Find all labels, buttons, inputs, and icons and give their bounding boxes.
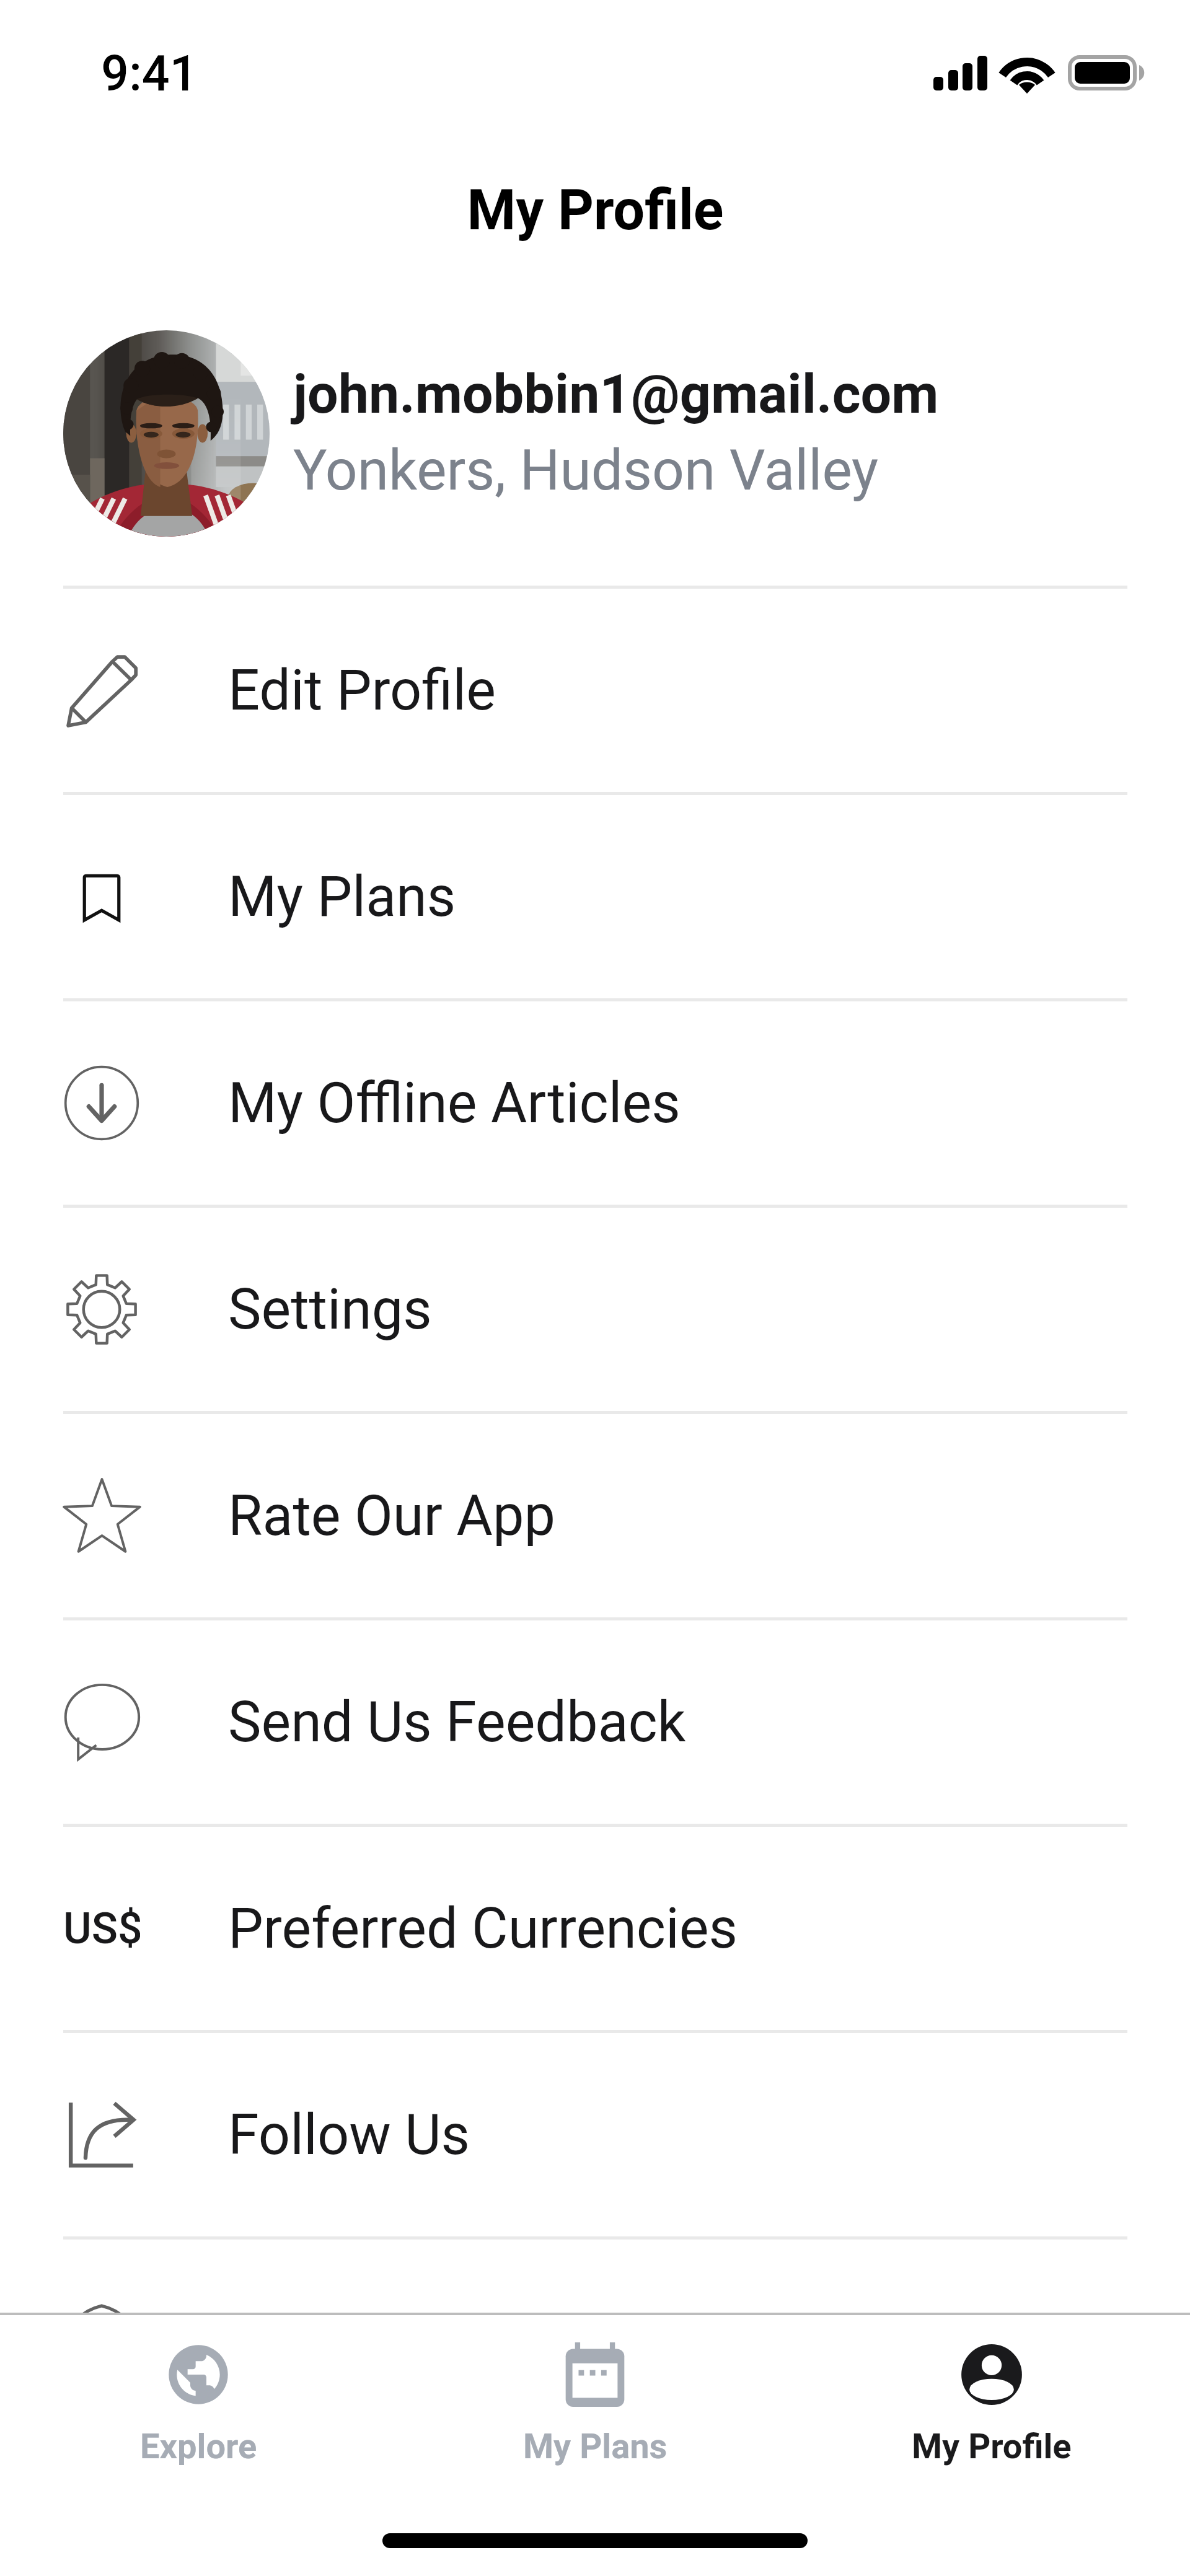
button[interactable]: Offline articles [0, 1001, 1190, 1205]
other: Edit [63, 652, 140, 729]
staticText: john.mobbin1@gmail.com [293, 362, 939, 426]
staticText: Yonkers, Hudson Valley [293, 437, 879, 504]
button[interactable]: Send us feedback [0, 1620, 1190, 1824]
staticText: My Plans [228, 864, 456, 930]
other: Send us feedback [63, 1684, 140, 1761]
button[interactable]: My Profile [793, 2315, 1190, 2467]
staticText: My Profile [912, 2426, 1072, 2467]
button[interactable]: My Plans [397, 2315, 793, 2467]
staticText: My Plans [523, 2426, 668, 2467]
button[interactable]: US$ [0, 1827, 1190, 2030]
staticText: My Profile [467, 178, 724, 243]
staticText: US$ [63, 1903, 140, 1954]
other: Rate our app [63, 1477, 140, 1554]
staticText: About Us [228, 2309, 456, 2374]
other: My plans [63, 858, 140, 935]
staticText: Follow Us [228, 2103, 470, 2168]
staticText: Explore [140, 2426, 257, 2467]
button[interactable]: Edit [0, 589, 1190, 792]
staticText: Rate Our App [228, 1484, 556, 1549]
other: Profile photo [63, 330, 270, 537]
staticText: Settings [228, 1277, 432, 1342]
staticText: My Offline Articles [228, 1071, 681, 1136]
button[interactable]: Settings [0, 1208, 1190, 1411]
staticText: Preferred Currencies [228, 1896, 738, 1961]
button[interactable]: Follow us [0, 2033, 1190, 2236]
button[interactable]: My plans [0, 795, 1190, 998]
button[interactable]: Explore [0, 2315, 397, 2467]
other: About us [63, 2303, 140, 2380]
button[interactable]: Rate our app [0, 1414, 1190, 1617]
other: Settings [63, 1271, 140, 1348]
staticText: Edit Profile [228, 658, 496, 723]
staticText: 9:41 [101, 45, 198, 103]
other: Follow us [63, 2096, 140, 2173]
staticText: Send Us Feedback [228, 1690, 686, 1755]
other: Offline articles [63, 1065, 140, 1141]
button[interactable]: About us [0, 2240, 1190, 2443]
